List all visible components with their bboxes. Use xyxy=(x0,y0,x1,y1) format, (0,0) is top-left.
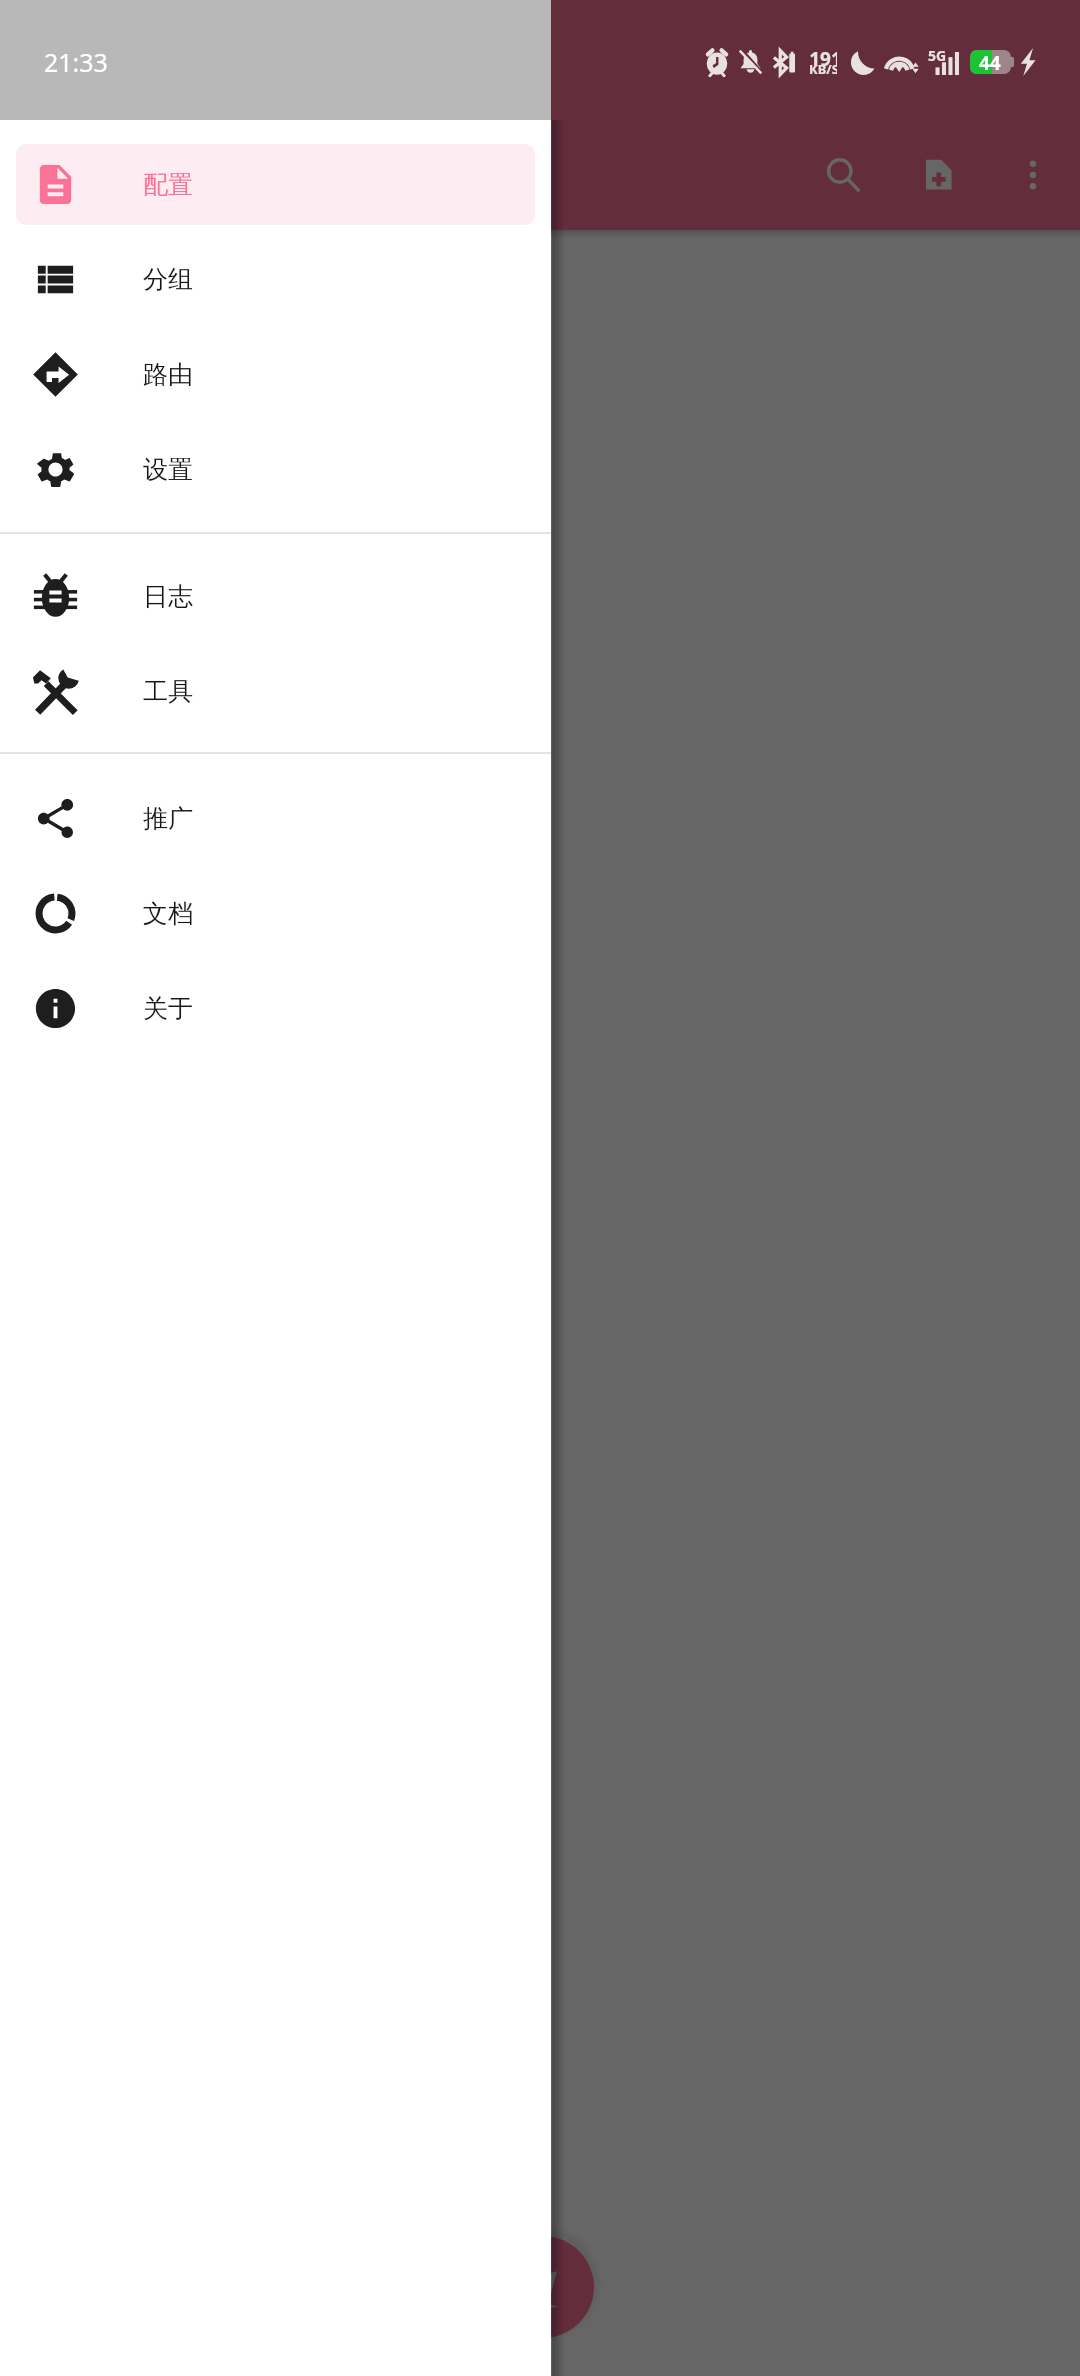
staticText: 191 xyxy=(809,46,837,72)
button[interactable]: Start xyxy=(492,2236,594,2338)
button[interactable]: Close navigation drawer xyxy=(0,0,1080,2376)
button[interactable]: 工具 xyxy=(16,651,535,732)
button[interactable]: More options xyxy=(985,120,1080,230)
button[interactable]: Search xyxy=(795,120,890,230)
button[interactable]: 分组 xyxy=(16,239,535,320)
staticText: 路由 xyxy=(143,359,193,390)
button[interactable]: 推广 xyxy=(16,778,535,859)
button[interactable]: 文档 xyxy=(16,873,535,954)
button[interactable]: 路由 xyxy=(16,334,535,415)
button[interactable]: 关于 xyxy=(16,968,535,1049)
staticText: 配置 xyxy=(143,169,193,200)
staticText: 设置 xyxy=(143,454,193,485)
button[interactable]: 日志 xyxy=(16,556,535,637)
staticText: KB/S xyxy=(809,60,837,78)
staticText: 44 xyxy=(979,50,1001,74)
button[interactable]: 设置 xyxy=(16,429,535,510)
staticText: 工具 xyxy=(143,676,193,707)
staticText: 推广 xyxy=(143,803,193,834)
staticText: 分组 xyxy=(143,264,193,295)
button[interactable]: New profile xyxy=(890,120,985,230)
staticText: 日志 xyxy=(143,581,193,612)
staticText: 关于 xyxy=(143,993,193,1024)
staticText: 文档 xyxy=(143,898,193,929)
staticText: 21:33 xyxy=(44,45,108,79)
staticText: 5G xyxy=(928,46,947,65)
button[interactable]: 配置 xyxy=(16,144,535,225)
